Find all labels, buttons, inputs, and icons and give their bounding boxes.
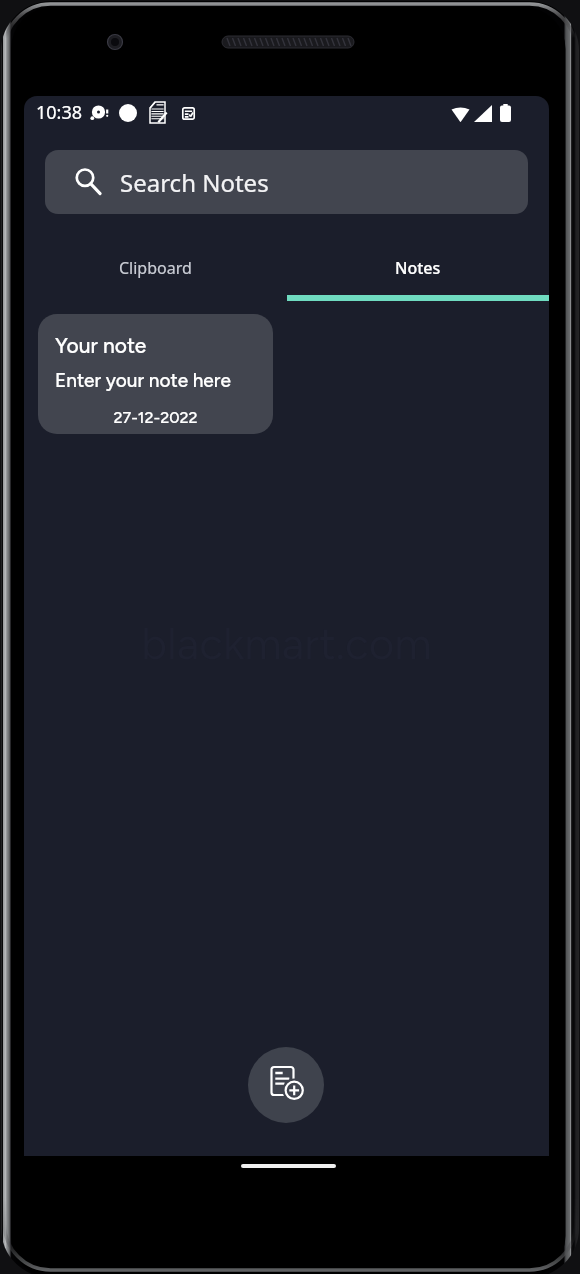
staticText: 27-12-2022 xyxy=(38,408,273,427)
staticText: Your note xyxy=(55,333,147,358)
staticText: 10:38 xyxy=(36,100,83,125)
button[interactable]: Notes xyxy=(286,241,549,294)
button[interactable]: Your note xyxy=(38,314,273,434)
button[interactable]: Search Notes xyxy=(45,150,528,214)
staticText: Notes xyxy=(395,257,441,279)
staticText: Clipboard xyxy=(119,257,192,279)
staticText: Search Notes xyxy=(120,166,269,199)
button[interactable]: Clipboard xyxy=(24,241,286,294)
staticText: Enter your note here xyxy=(55,369,231,392)
button[interactable]: Add note xyxy=(248,1047,324,1123)
